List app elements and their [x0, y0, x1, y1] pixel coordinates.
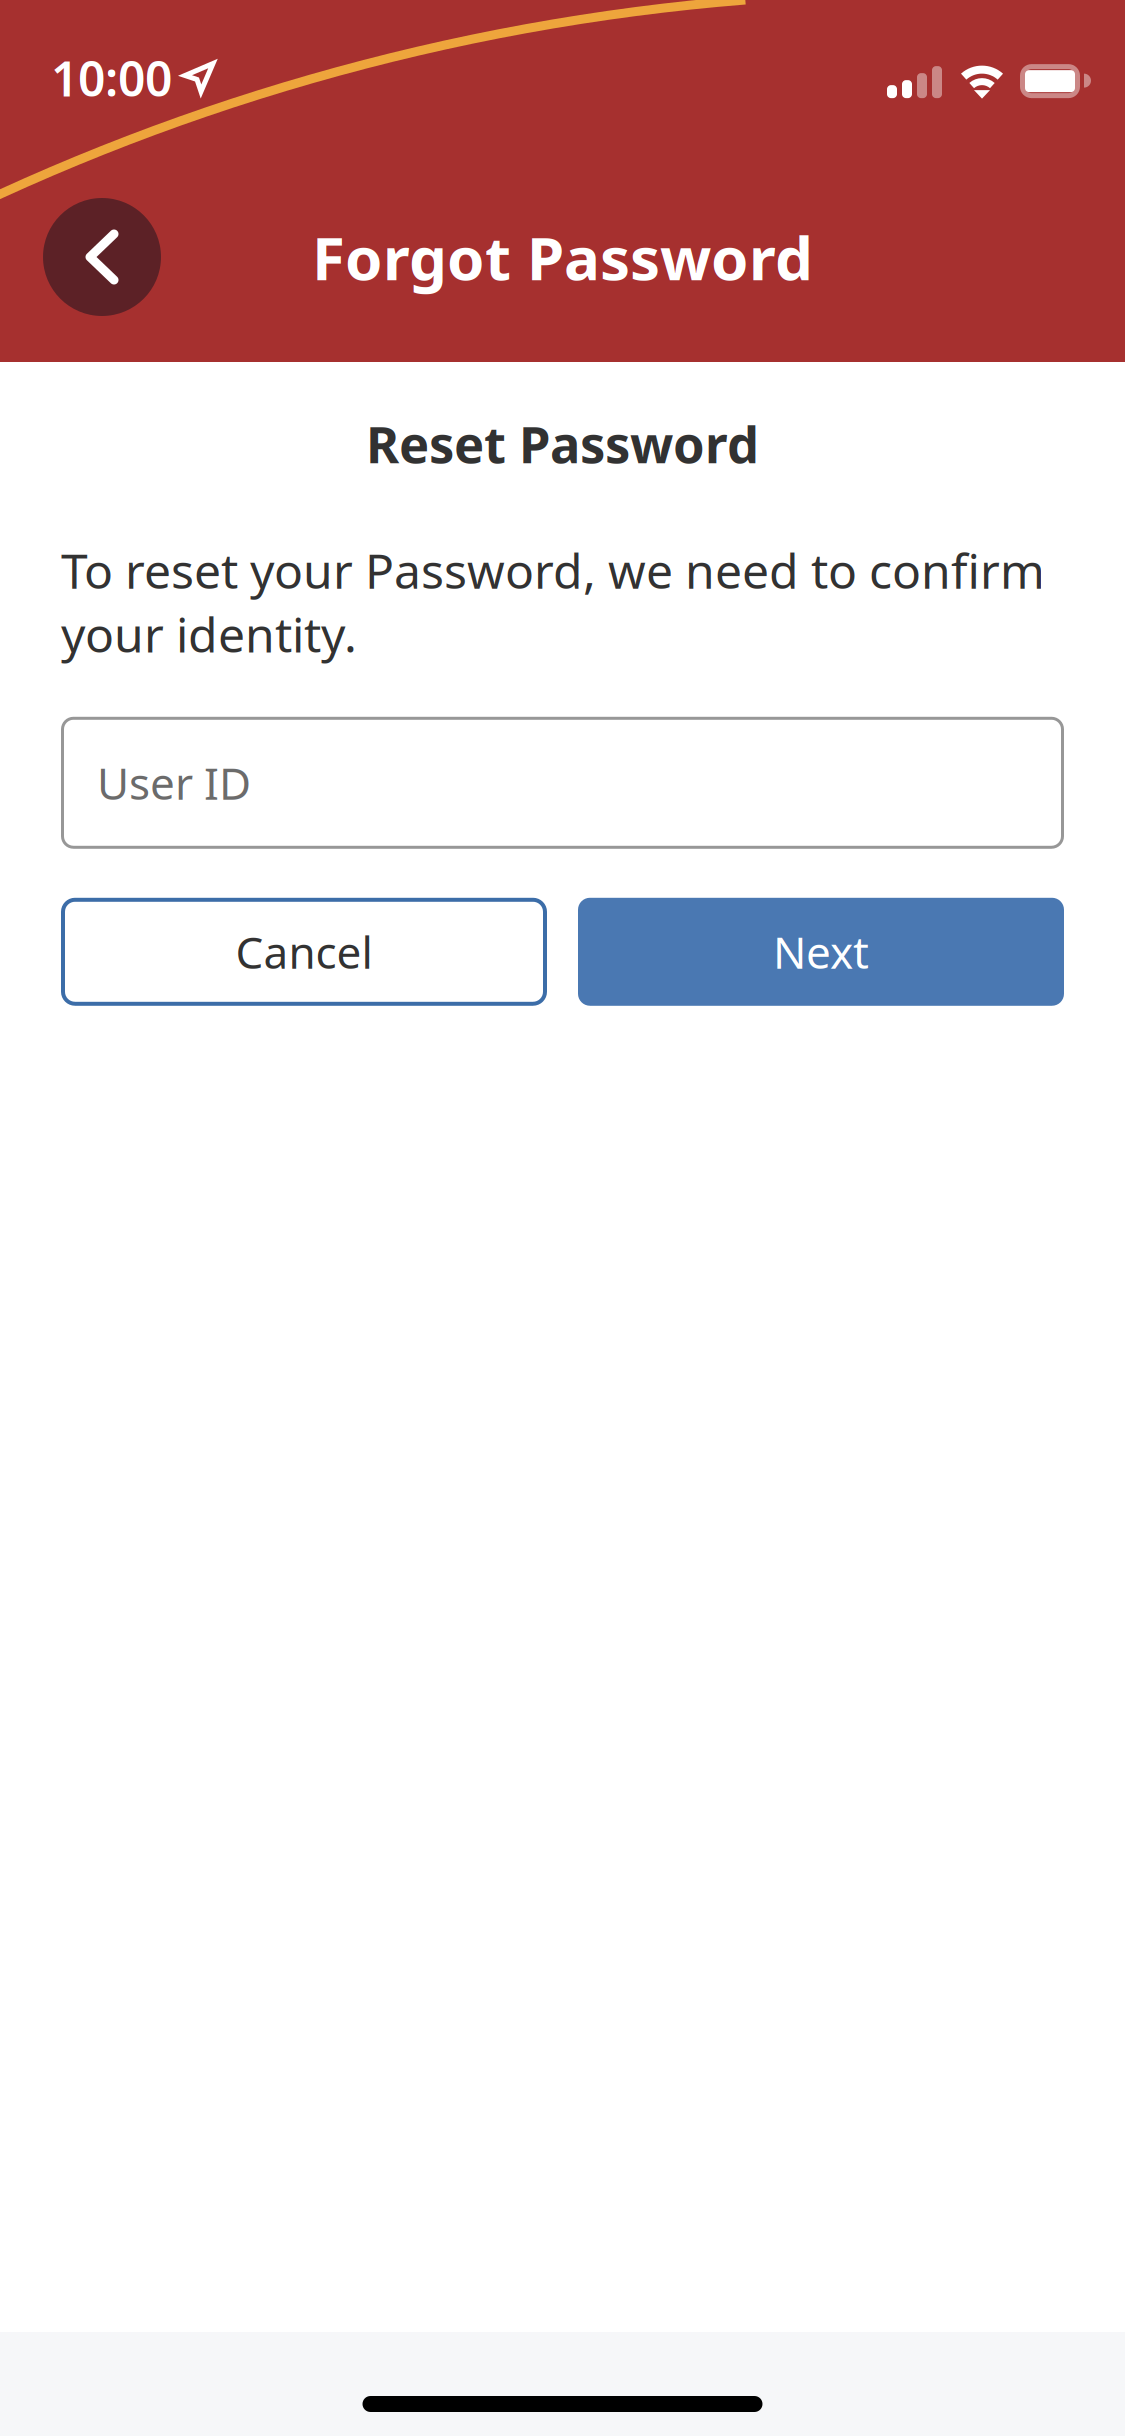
staticText: User ID: [97, 754, 251, 812]
staticText: 10:00: [51, 46, 172, 110]
staticText: Cancel: [235, 923, 372, 981]
staticText: To reset your Password, we need to confi…: [61, 538, 1045, 666]
button[interactable]: Next: [578, 898, 1064, 1006]
staticText: Reset Password: [366, 410, 759, 477]
button[interactable]: Cancel: [61, 898, 547, 1006]
staticText: Forgot Password: [312, 217, 813, 297]
staticText: Next: [773, 923, 869, 981]
button[interactable]: Back: [43, 198, 161, 316]
